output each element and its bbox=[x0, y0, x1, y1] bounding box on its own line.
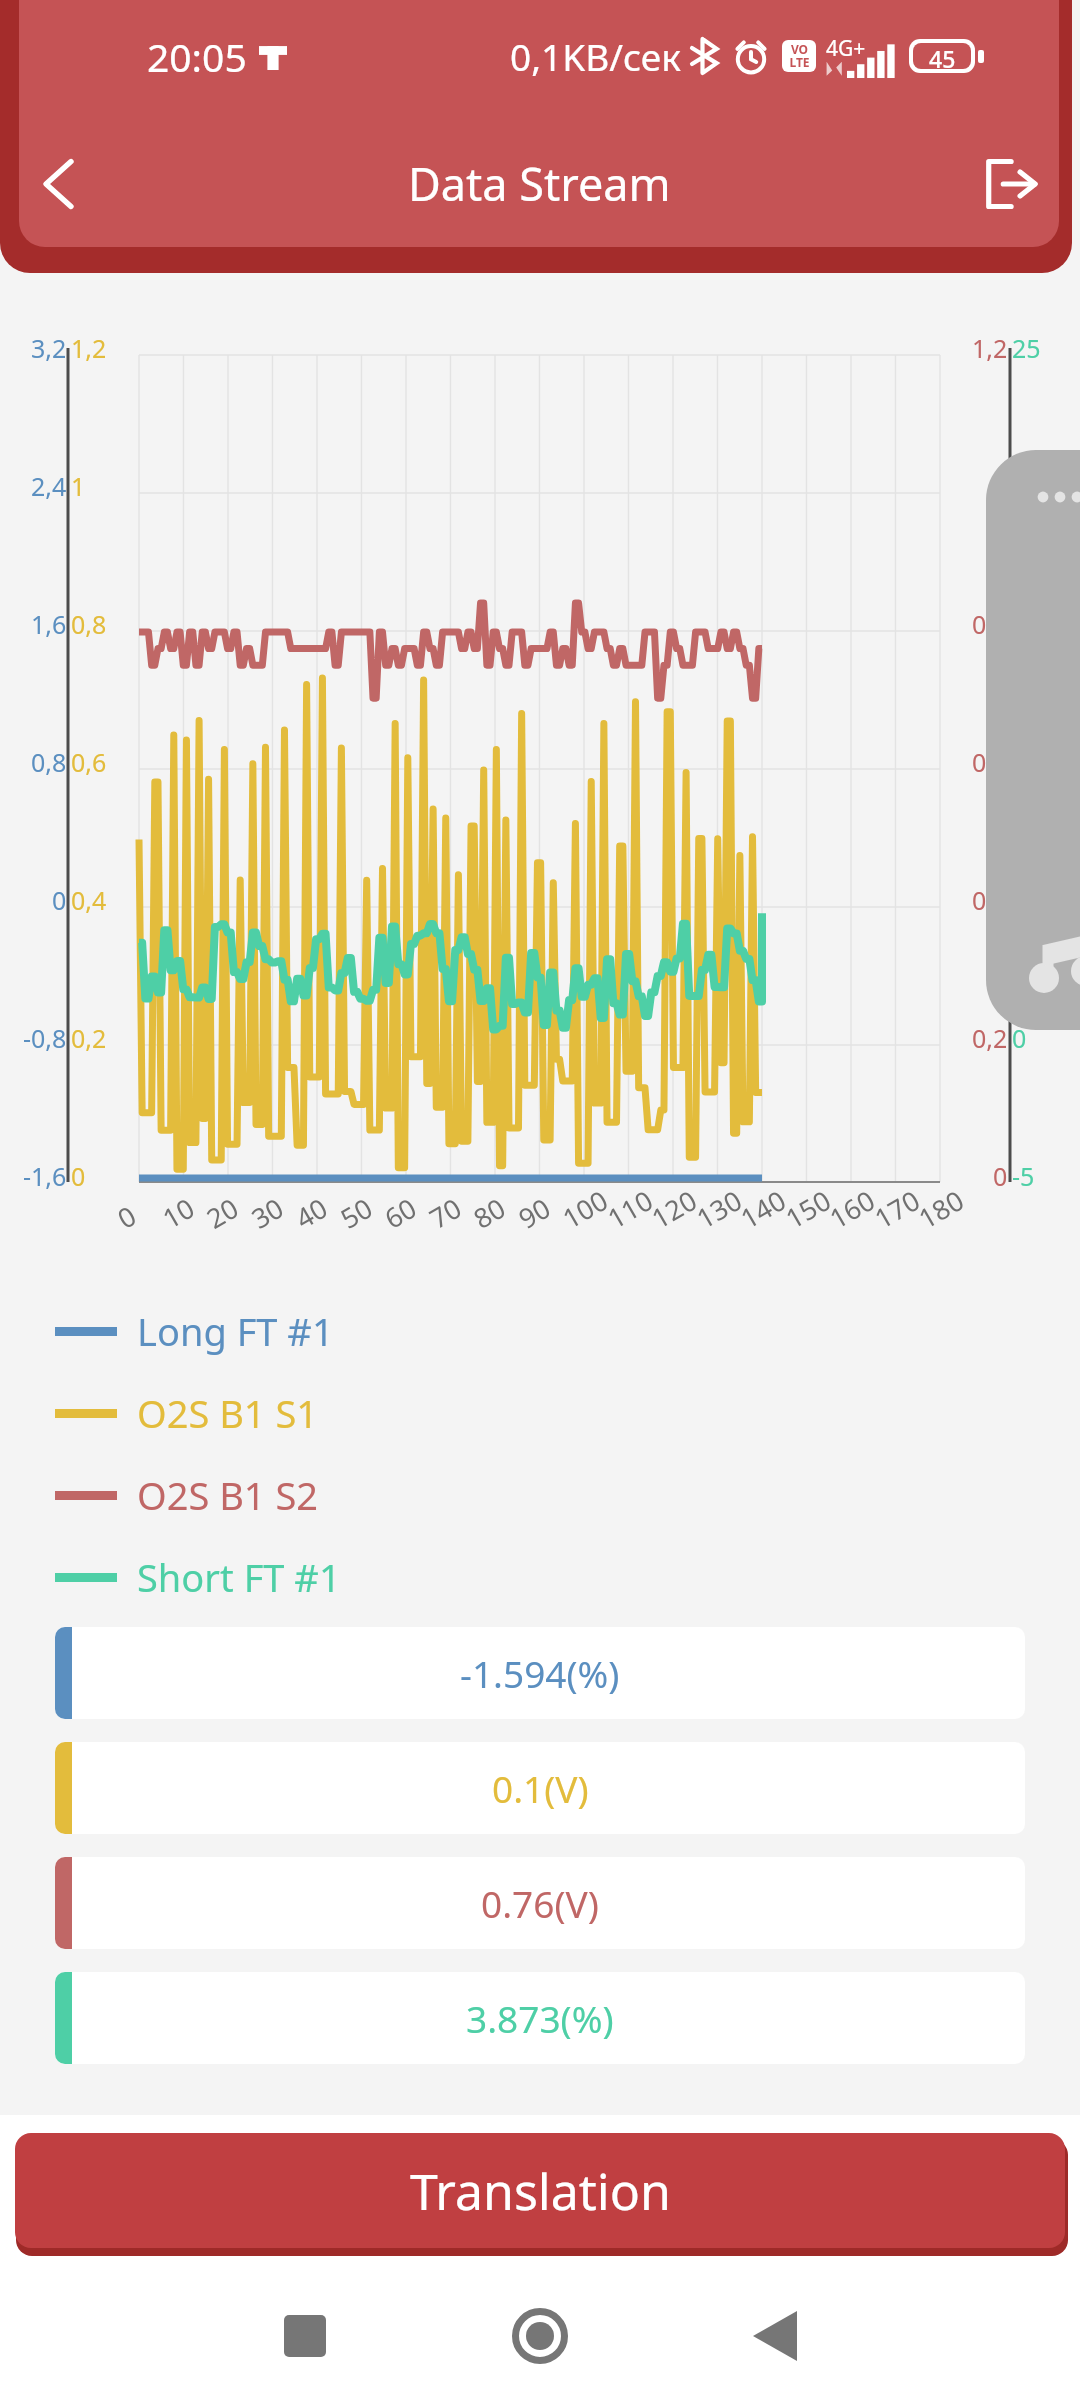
staticText: 0 bbox=[52, 883, 67, 917]
button[interactable]: Home bbox=[485, 2281, 595, 2391]
staticText: Long FT #1 bbox=[137, 1305, 334, 1357]
staticText: -5 bbox=[1012, 1159, 1035, 1193]
staticText: 2,4 bbox=[31, 469, 67, 503]
staticText: VO LTE bbox=[789, 41, 810, 71]
staticText: 20 bbox=[1012, 469, 1041, 503]
button[interactable]: 3.873(%) bbox=[55, 1972, 1025, 2064]
button[interactable]: Volume panel bbox=[986, 450, 1080, 1030]
staticText: Data Stream bbox=[408, 153, 671, 214]
button[interactable]: 0.1(V) bbox=[55, 1742, 1025, 1834]
staticText: 10 bbox=[155, 1189, 201, 1237]
staticText: 90 bbox=[511, 1189, 557, 1237]
staticText: 25 bbox=[1012, 331, 1041, 365]
staticText: 0.1(V) bbox=[492, 1763, 589, 1813]
button[interactable]: Recent apps bbox=[250, 2281, 360, 2391]
staticText: -1.594(%) bbox=[460, 1648, 620, 1698]
staticText: 45 bbox=[929, 43, 956, 69]
staticText: 60 bbox=[377, 1189, 423, 1237]
staticText: 170 bbox=[867, 1181, 927, 1237]
staticText: 0 bbox=[1012, 1021, 1027, 1055]
staticText: 0,2 bbox=[972, 1021, 1008, 1055]
staticText: 130 bbox=[689, 1181, 749, 1237]
staticText: O2S B1 S1 bbox=[137, 1387, 319, 1439]
staticText: 0 bbox=[993, 1159, 1008, 1193]
staticText: 160 bbox=[822, 1181, 882, 1237]
staticText: 0,8 bbox=[31, 745, 67, 779]
button[interactable]: 0.76(V) bbox=[55, 1857, 1025, 1949]
staticText: 100 bbox=[555, 1181, 615, 1237]
staticText: 0,6 bbox=[71, 745, 107, 779]
staticText: 1 bbox=[71, 469, 86, 503]
staticText: 0,1KB/сек bbox=[510, 31, 681, 81]
staticText: 0,8 bbox=[972, 607, 1008, 641]
button[interactable]: -1.594(%) bbox=[55, 1627, 1025, 1719]
staticText: 3,2 bbox=[31, 331, 67, 365]
staticText: 0.76(V) bbox=[481, 1878, 599, 1928]
staticText: 0,4 bbox=[972, 883, 1008, 917]
staticText: 40 bbox=[288, 1189, 334, 1237]
button[interactable]: Back bbox=[720, 2281, 830, 2391]
staticText: 0,8 bbox=[71, 607, 107, 641]
staticText: 30 bbox=[244, 1189, 290, 1237]
staticText: Short FT #1 bbox=[137, 1551, 341, 1603]
staticText: 110 bbox=[600, 1181, 660, 1237]
staticText: 70 bbox=[422, 1189, 468, 1237]
staticText: 20 bbox=[199, 1189, 245, 1237]
staticText: 180 bbox=[911, 1181, 971, 1237]
staticText: 1 bbox=[993, 469, 1008, 503]
staticText: 120 bbox=[644, 1181, 704, 1237]
button[interactable]: Back bbox=[19, 125, 115, 243]
staticText: Translation bbox=[410, 2157, 671, 2225]
staticText: 50 bbox=[333, 1189, 379, 1237]
button[interactable]: Translation bbox=[15, 2133, 1065, 2248]
staticText: 20:05 bbox=[147, 30, 247, 83]
staticText: 0,6 bbox=[972, 745, 1008, 779]
staticText: -0,8 bbox=[23, 1021, 67, 1055]
staticText: 0 bbox=[71, 1159, 86, 1193]
staticText: 150 bbox=[778, 1181, 838, 1237]
staticText: 1,2 bbox=[71, 331, 107, 365]
staticText: 0,2 bbox=[71, 1021, 107, 1055]
staticText: 140 bbox=[733, 1181, 793, 1237]
staticText: 80 bbox=[466, 1189, 512, 1237]
staticText: 1,2 bbox=[972, 331, 1008, 365]
staticText: -1,6 bbox=[23, 1159, 67, 1193]
staticText: 0 bbox=[110, 1197, 143, 1237]
button[interactable]: Exit bbox=[950, 124, 1059, 244]
staticText: 4G+ bbox=[826, 34, 866, 63]
staticText: 3.873(%) bbox=[466, 1993, 614, 2043]
staticText: 0,4 bbox=[71, 883, 107, 917]
staticText: O2S B1 S2 bbox=[137, 1469, 319, 1521]
staticText: 1,6 bbox=[31, 607, 67, 641]
